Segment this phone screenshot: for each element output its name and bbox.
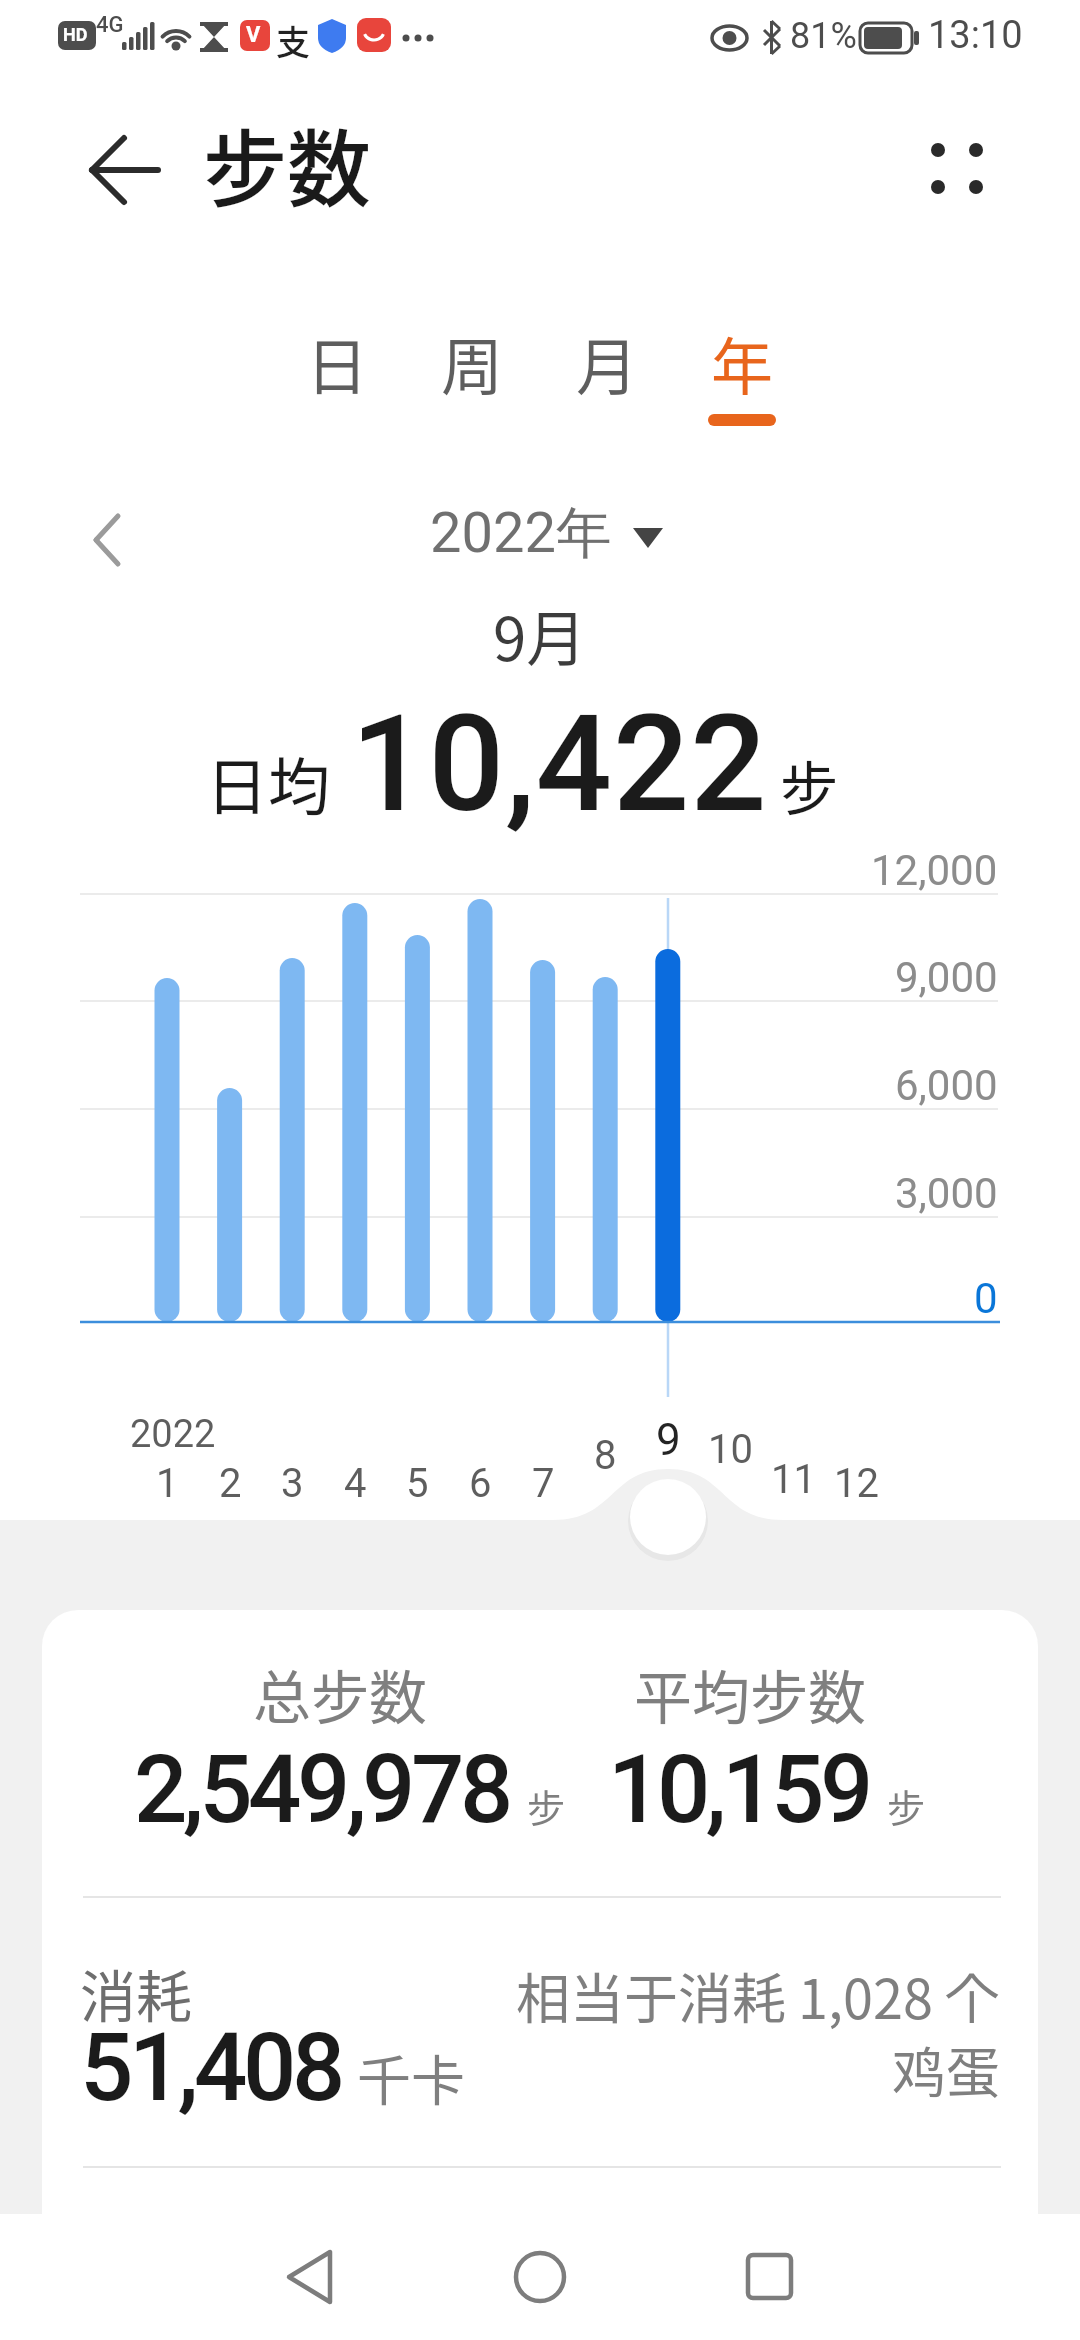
staticText: 2022 bbox=[130, 1412, 216, 1457]
staticText: 10,422 bbox=[351, 686, 768, 843]
staticText: 2,549,978 bbox=[134, 1735, 509, 1845]
staticText: 13:10 bbox=[928, 13, 1023, 58]
staticText: 日 bbox=[306, 318, 369, 408]
button[interactable] bbox=[720, 2230, 820, 2325]
staticText: HD bbox=[63, 24, 88, 45]
staticText: 年 bbox=[711, 318, 774, 408]
button[interactable]: 周 bbox=[441, 318, 504, 408]
staticText: 步 bbox=[887, 1778, 926, 1833]
staticText: 51,408 bbox=[80, 2013, 341, 2123]
staticText: 11 bbox=[771, 1456, 816, 1503]
staticText: 6,000 bbox=[895, 1061, 998, 1110]
button[interactable] bbox=[70, 500, 140, 570]
button[interactable] bbox=[910, 120, 1010, 220]
staticText: 12,000 bbox=[871, 846, 998, 895]
staticText: 1 bbox=[156, 1460, 179, 1507]
button[interactable] bbox=[490, 2230, 590, 2325]
button[interactable]: 月 bbox=[576, 318, 639, 408]
staticText: 7 bbox=[532, 1460, 555, 1507]
staticText: 3,000 bbox=[895, 1169, 998, 1218]
staticText: 2022年 bbox=[430, 498, 612, 569]
button[interactable]: 2022年 bbox=[0, 498, 1080, 569]
button[interactable]: 年 bbox=[711, 318, 774, 408]
button[interactable] bbox=[620, 1455, 716, 1555]
staticText: 相当于消耗 1,028 个 bbox=[516, 1956, 1000, 2034]
staticText: 千卡 bbox=[357, 2038, 465, 2116]
staticText: V bbox=[246, 22, 261, 48]
staticText: 2 bbox=[219, 1460, 242, 1507]
staticText: 9月 bbox=[493, 591, 587, 678]
staticText: 9 bbox=[656, 1414, 681, 1466]
staticText: 鸡蛋 bbox=[892, 2030, 1000, 2108]
staticText: 6 bbox=[469, 1460, 492, 1507]
staticText: 月 bbox=[576, 318, 639, 408]
staticText: 5 bbox=[406, 1460, 429, 1507]
staticText: 12 bbox=[834, 1460, 879, 1507]
button[interactable]: 日 bbox=[306, 318, 369, 408]
staticText: 步 bbox=[527, 1778, 566, 1833]
staticText: 4 bbox=[344, 1460, 367, 1507]
staticText: 步 bbox=[780, 743, 839, 827]
staticText: 9,000 bbox=[895, 953, 998, 1002]
staticText: 支 bbox=[276, 16, 310, 65]
staticText: 8 bbox=[594, 1432, 617, 1479]
staticText: 平均步数 bbox=[634, 1652, 867, 1736]
staticText: 0 bbox=[974, 1274, 998, 1323]
staticText: 4G bbox=[96, 12, 124, 38]
staticText: 日均 bbox=[206, 738, 331, 828]
staticText: 消耗 bbox=[80, 1952, 192, 2033]
staticText: 81% bbox=[790, 15, 857, 57]
staticText: 10,159 bbox=[608, 1735, 869, 1845]
button[interactable] bbox=[260, 2230, 360, 2325]
staticText: 10 bbox=[708, 1426, 753, 1473]
staticText: 步数 bbox=[203, 103, 372, 225]
staticText: 总步数 bbox=[253, 1652, 428, 1736]
staticText: 周 bbox=[441, 318, 504, 408]
button[interactable] bbox=[70, 130, 170, 210]
staticText: 3 bbox=[281, 1460, 304, 1507]
